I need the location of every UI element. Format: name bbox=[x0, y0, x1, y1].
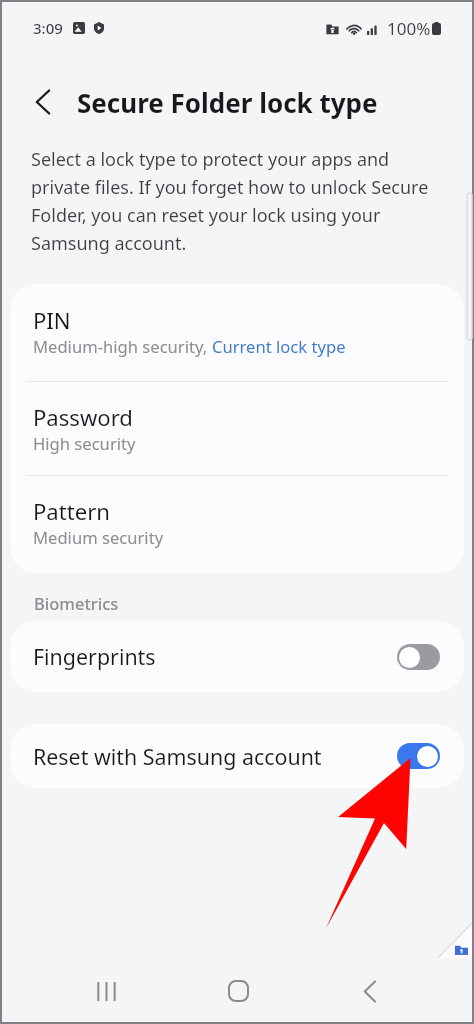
staticText: Medium security bbox=[33, 526, 164, 549]
button[interactable]: Home bbox=[172, 960, 304, 1022]
button[interactable]: Turn off bbox=[397, 743, 440, 769]
staticText: Biometrics bbox=[34, 592, 119, 614]
button[interactable]: Navigate up bbox=[30, 87, 56, 117]
button[interactable]: Fingerprints bbox=[10, 621, 464, 692]
staticText: PIN bbox=[33, 305, 71, 335]
button[interactable]: PIN bbox=[10, 284, 464, 381]
staticText: Select a lock type to protect your apps … bbox=[31, 147, 431, 256]
button[interactable]: Pattern bbox=[10, 476, 464, 573]
staticText: Secure Folder lock type bbox=[77, 85, 378, 120]
staticText: Password bbox=[33, 402, 133, 432]
staticText: Medium-high security, bbox=[33, 335, 212, 358]
button[interactable]: Turn on bbox=[397, 644, 440, 670]
staticText: Fingerprints bbox=[33, 642, 156, 671]
staticText: Reset with Samsung account bbox=[33, 742, 322, 771]
staticText: 3:09 bbox=[33, 18, 63, 38]
staticText: Current lock type bbox=[212, 335, 346, 358]
button[interactable]: Password bbox=[10, 382, 464, 475]
button[interactable]: Recent apps bbox=[40, 960, 172, 1022]
button[interactable]: Reset with Samsung account bbox=[10, 724, 464, 788]
staticText: Pattern bbox=[33, 496, 110, 526]
button[interactable]: Back bbox=[304, 960, 436, 1022]
staticText: 100% bbox=[387, 17, 431, 40]
staticText: High security bbox=[33, 432, 136, 455]
